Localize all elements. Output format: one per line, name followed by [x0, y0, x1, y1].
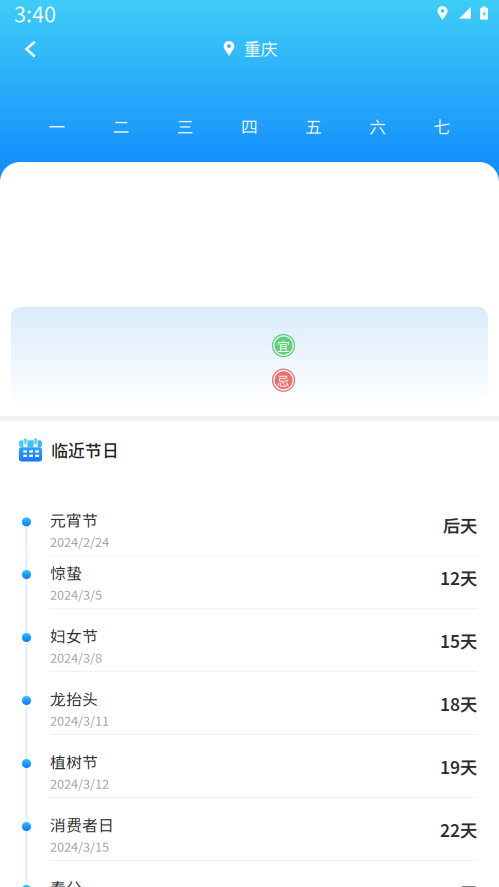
- staticText: 元宵节: [50, 508, 98, 531]
- staticText: 18天: [440, 691, 477, 716]
- staticText: 2024/3/5: [50, 585, 102, 603]
- staticText: 12天: [440, 565, 477, 590]
- staticText: 春分: [50, 876, 82, 887]
- staticText: 忌: [277, 371, 290, 389]
- staticText: 消费者日: [50, 813, 114, 836]
- button[interactable]: 龙抬头: [0, 672, 499, 735]
- button[interactable]: 惊蛰: [0, 546, 499, 609]
- button[interactable]: 宜: [272, 334, 295, 357]
- staticText: 2024/3/8: [50, 648, 102, 666]
- staticText: 临近节日: [51, 438, 119, 462]
- button[interactable]: 春分: [0, 861, 499, 887]
- button[interactable]: 植树节: [0, 735, 499, 798]
- staticText: 3:40: [14, 0, 56, 29]
- staticText: 22天: [440, 817, 477, 842]
- button[interactable]: 妇女节: [0, 609, 499, 672]
- staticText: 2024/3/15: [50, 837, 109, 855]
- staticText: 19天: [440, 754, 477, 779]
- staticText: 植树节: [50, 750, 98, 773]
- staticText: 龙抬头: [50, 687, 98, 710]
- staticText: 后天: [443, 512, 477, 537]
- button[interactable]: 消费者日: [0, 798, 499, 861]
- staticText: 2024/3/11: [50, 711, 109, 729]
- staticText: 15天: [440, 628, 477, 653]
- staticText: 三: [177, 114, 194, 138]
- button[interactable]: 元宵节: [0, 483, 499, 546]
- staticText: 宜: [277, 336, 290, 355]
- button[interactable]: 重庆: [213, 29, 286, 68]
- staticText: 2024/3/12: [50, 774, 109, 792]
- staticText: 重庆: [244, 36, 278, 61]
- button[interactable]: 忌: [272, 369, 295, 392]
- staticText: 妇女节: [50, 624, 98, 647]
- staticText: 27天: [440, 880, 477, 887]
- staticText: 二: [113, 114, 130, 138]
- button[interactable]: Back: [12, 29, 48, 69]
- staticText: 四: [241, 114, 258, 138]
- staticText: 七: [433, 114, 450, 138]
- staticText: 惊蛰: [50, 561, 82, 584]
- staticText: 六: [369, 114, 386, 138]
- staticText: 五: [305, 114, 322, 138]
- staticText: 2024/2/24: [50, 532, 109, 551]
- staticText: 一: [49, 114, 66, 138]
